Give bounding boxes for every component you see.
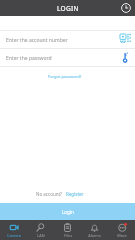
staticText: No account?: [36, 191, 63, 197]
button[interactable]: Enter the account number: [0, 31, 135, 48]
staticText: Enter the password: [6, 55, 118, 62]
staticText: Alarms: [88, 233, 101, 238]
button[interactable]: More: [108, 220, 135, 240]
staticText: Files: [64, 233, 72, 238]
button[interactable]: Alarms: [81, 220, 108, 240]
button[interactable]: Login: [0, 203, 135, 220]
staticText: Login: [62, 209, 74, 215]
button[interactable]: Forgot password?: [46, 74, 84, 79]
staticText: Enter the account number: [6, 37, 118, 44]
button[interactable]: Files: [54, 220, 81, 240]
button[interactable]: Show password: [118, 50, 133, 65]
button[interactable]: Camera: [0, 220, 27, 240]
button[interactable]: Register: [66, 191, 84, 197]
button[interactable]: History: [119, 1, 133, 15]
button[interactable]: Enter the password: [0, 49, 135, 66]
staticText: LAN: [37, 233, 45, 238]
staticText: LOGIN: [57, 4, 79, 13]
staticText: More: [117, 233, 127, 238]
button[interactable]: LAN: [27, 220, 54, 240]
staticText: Camera: [7, 233, 21, 238]
button[interactable]: Scan QR code: [118, 32, 133, 47]
